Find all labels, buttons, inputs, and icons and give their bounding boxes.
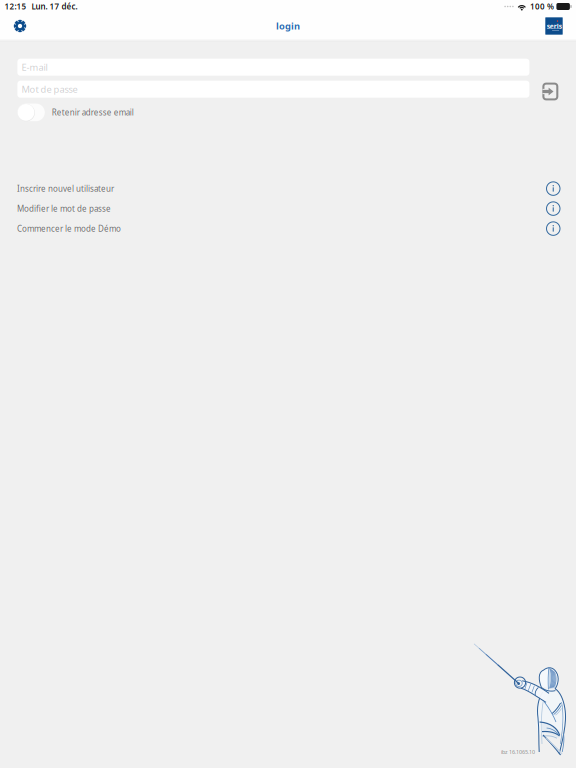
staticText: E-mail <box>21 61 47 73</box>
staticText: login <box>276 20 300 32</box>
button[interactable]: Modifier le mot de passe <box>0 199 576 219</box>
button[interactable]: Retenir adresse email <box>17 104 45 121</box>
staticText: ibz 16.1065.10 <box>501 748 535 756</box>
button[interactable]: Seris <box>540 13 568 39</box>
button[interactable]: Inscrire nouvel utilisateur <box>0 179 576 199</box>
staticText: Commencer le mode Démo <box>17 223 121 234</box>
button[interactable]: Settings <box>6 13 34 39</box>
button[interactable]: Log in <box>541 84 557 99</box>
staticText: Retenir adresse email <box>52 107 134 118</box>
staticText: Mot de passe <box>21 83 77 95</box>
staticText: Modifier le mot de passe <box>17 203 111 214</box>
button[interactable]: Commencer le mode Démo <box>0 219 576 239</box>
staticText: Lun. 17 déc. <box>32 1 78 12</box>
staticText: seris <box>547 22 562 31</box>
button[interactable]: Mot de passe <box>17 81 529 98</box>
staticText: 12:15 <box>5 1 27 12</box>
staticText: 100 % <box>530 1 554 12</box>
staticText: Inscrire nouvel utilisateur <box>17 183 114 194</box>
